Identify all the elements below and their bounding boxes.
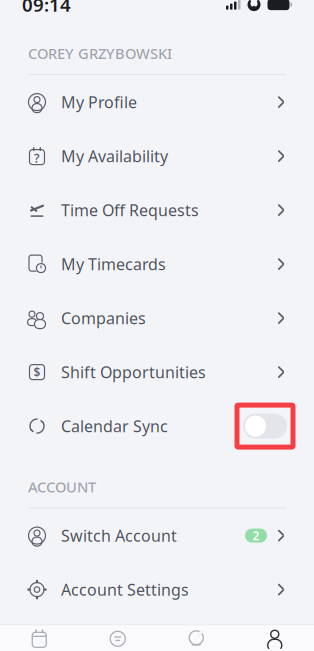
button[interactable]: Calendar Sync	[0, 399, 314, 453]
staticText: My Timecards	[61, 253, 166, 275]
staticText: Calendar Sync	[61, 415, 168, 437]
staticText: $	[33, 364, 40, 380]
staticText: Account Settings	[61, 579, 189, 600]
staticText: Companies	[61, 307, 146, 329]
button[interactable]: Time Off Requests	[0, 183, 314, 237]
button[interactable]: Switch Account	[0, 509, 314, 563]
staticText: Switch Account	[61, 525, 177, 546]
button[interactable]: Messages	[78, 625, 157, 651]
button[interactable]: Schedule	[0, 625, 78, 651]
staticText: ?	[34, 150, 40, 166]
staticText: 2	[252, 528, 259, 543]
button[interactable]: Companies	[0, 291, 314, 345]
button[interactable]: Notifications	[157, 625, 235, 651]
staticText: 09:14	[22, 0, 71, 17]
staticText: COREY GRZYBOWSKI	[28, 44, 172, 63]
button[interactable]: $	[0, 345, 314, 399]
staticText: My Profile	[61, 91, 137, 113]
button[interactable]: My Profile	[0, 75, 314, 129]
staticText: Time Off Requests	[61, 199, 199, 221]
button[interactable]: My Timecards	[0, 237, 314, 291]
button[interactable]: ?	[0, 129, 314, 183]
button[interactable]: Account Settings	[0, 563, 314, 617]
button[interactable]: More	[235, 625, 314, 651]
staticText: My Availability	[61, 145, 168, 167]
staticText: ACCOUNT	[28, 477, 96, 497]
staticText: Shift Opportunities	[61, 361, 206, 383]
